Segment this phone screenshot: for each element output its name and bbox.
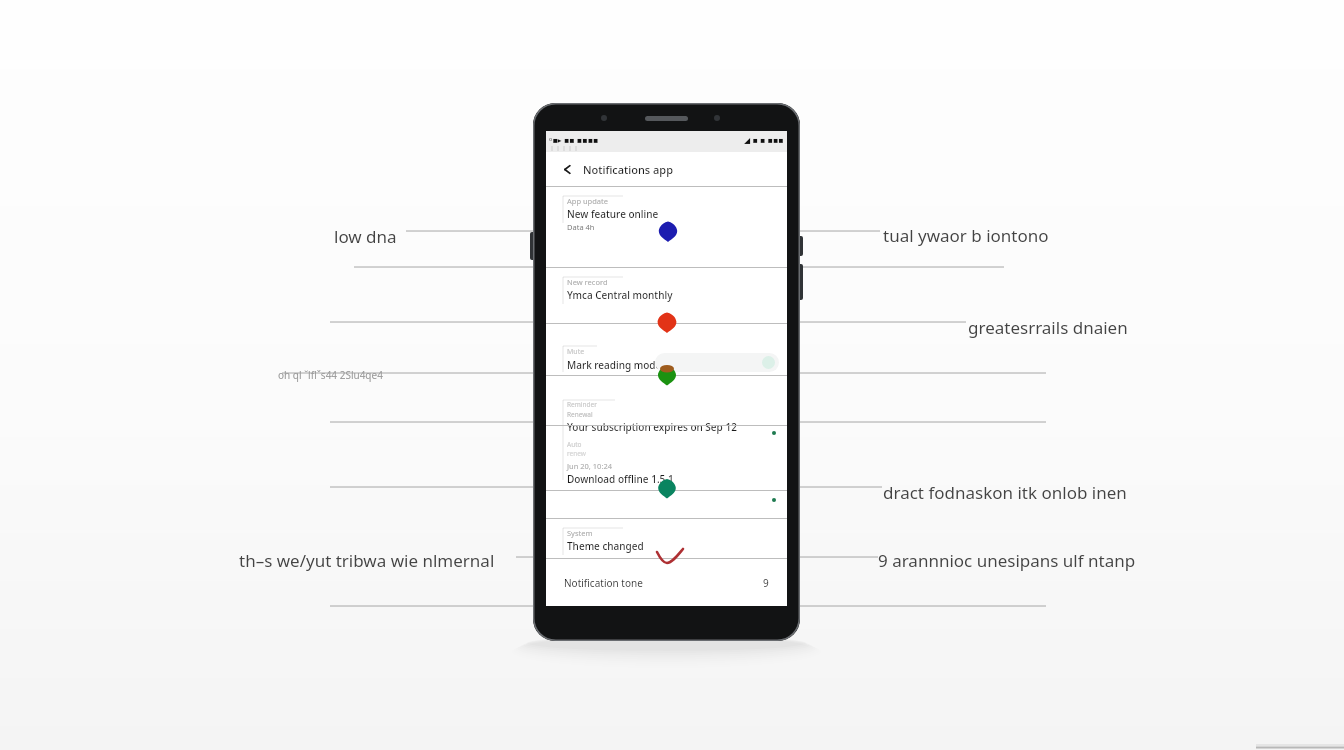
staticText: Your subscription expires on Sep 12 (567, 420, 737, 434)
staticText: Mark reading mode (567, 358, 662, 372)
staticText: Notification tone (564, 576, 643, 590)
staticText: Ymca Central monthly (567, 288, 673, 302)
staticText: ◢ ▪ ▪ ▪▪▪ (744, 134, 784, 145)
button[interactable]: Mute (546, 324, 787, 375)
staticText: Notifications app (583, 162, 673, 177)
staticText: Reminder (567, 400, 597, 409)
staticText: renew (567, 449, 586, 458)
button[interactable]: Back (559, 161, 575, 177)
staticText: greatesrrails dnaien (968, 316, 1128, 339)
button[interactable]: Reminder (546, 376, 787, 490)
staticText: ᵒ▪▸ ▪▪ ▪▪▪▪ (549, 134, 599, 145)
staticText: Mute (567, 347, 585, 357)
button[interactable]: App update (546, 187, 787, 267)
staticText: tual ywaor b iontono (883, 224, 1049, 247)
button[interactable]: Notification tone (546, 559, 787, 606)
button[interactable]: Back (546, 152, 787, 186)
staticText: low dna (334, 225, 397, 248)
staticText: New record (567, 277, 608, 287)
staticText: New feature online (567, 207, 659, 221)
staticText: dract fodnaskon itk onlob inen (883, 481, 1127, 504)
button[interactable]: System (546, 519, 787, 558)
staticText: 9 arannnioc unesipans ulf ntanp (878, 549, 1136, 572)
staticText: App update (567, 196, 608, 206)
staticText: 9 (763, 576, 769, 590)
staticText: Jun 20, 10:24 (567, 461, 612, 471)
staticText: Auto (567, 440, 582, 449)
staticText: th–s we/yut tribwa wie nlmernal (239, 549, 495, 572)
staticText: Download offline 1.5.1 (567, 472, 674, 486)
button[interactable]: New record (546, 268, 787, 323)
staticText: Data 4h (567, 222, 595, 232)
staticText: Renewal (567, 410, 593, 419)
staticText: System (567, 528, 593, 538)
staticText: oh ql ˘lflˇs44 2Slu4qe4 (278, 368, 383, 382)
staticText: Theme changed (567, 539, 644, 553)
button[interactable]: Search (655, 353, 779, 372)
